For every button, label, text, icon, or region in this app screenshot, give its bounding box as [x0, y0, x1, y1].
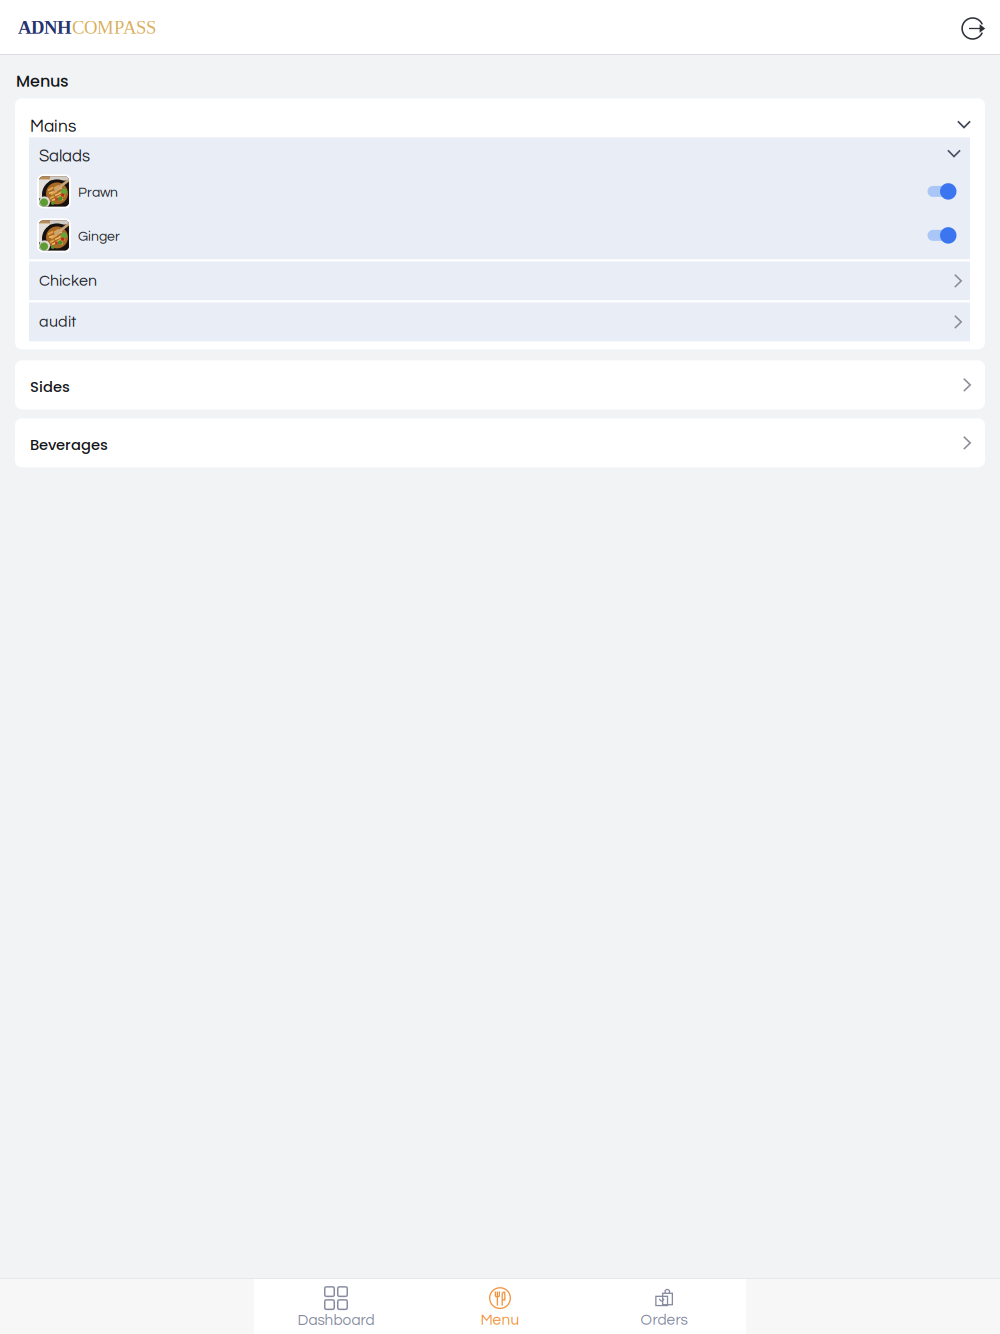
staticText: Sides [30, 377, 70, 397]
button[interactable]: Salads [29, 137, 970, 169]
button[interactable]: Beverages [15, 418, 985, 467]
button[interactable]: Prawn [29, 169, 970, 213]
button[interactable]: Menu [418, 1278, 582, 1334]
button[interactable]: Sides [15, 360, 985, 409]
button[interactable]: Ginger [29, 213, 970, 257]
button[interactable]: Chicken [29, 261, 970, 300]
staticText: audit [39, 314, 76, 330]
staticText: Menu [480, 1312, 519, 1328]
button[interactable]: ADNH [18, 17, 156, 38]
staticText: Ginger [78, 229, 120, 244]
button[interactable]: Dashboard [254, 1278, 418, 1334]
button[interactable]: audit [29, 302, 970, 341]
staticText: Prawn [78, 185, 118, 200]
button[interactable]: Orders [582, 1278, 746, 1334]
staticText: Orders [640, 1312, 687, 1328]
staticText: Beverages [30, 435, 108, 455]
button[interactable]: Mains [15, 111, 985, 137]
staticText: COMPASS [72, 17, 156, 38]
staticText: Menus [16, 70, 69, 92]
button[interactable]: Log out [955, 10, 993, 45]
staticText: ADNH [18, 17, 72, 38]
staticText: Dashboard [297, 1312, 374, 1328]
staticText: Mains [30, 117, 76, 135]
staticText: Salads [39, 148, 90, 165]
staticText: Chicken [39, 273, 97, 289]
